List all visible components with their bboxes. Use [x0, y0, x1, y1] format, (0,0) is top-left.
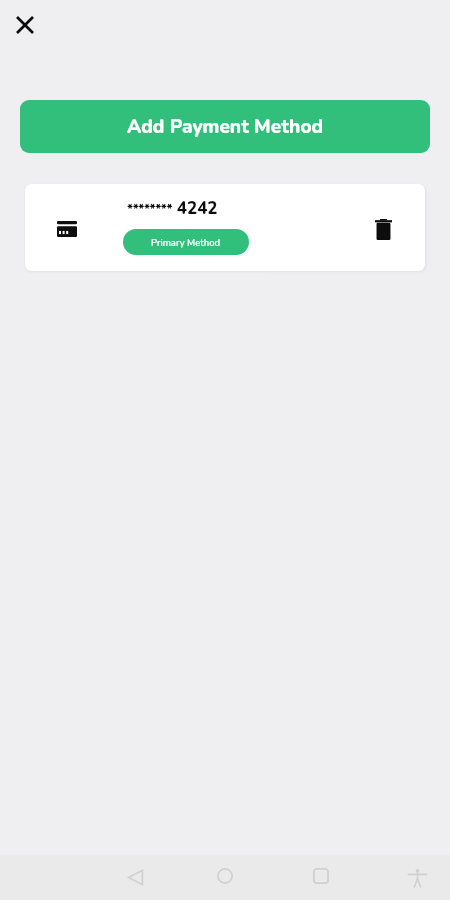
button[interactable]: Back [122, 864, 148, 890]
button[interactable]: Delete payment method [368, 214, 398, 244]
button[interactable]: Home [212, 863, 238, 889]
button[interactable]: Add Payment Method [20, 100, 430, 153]
button[interactable]: Primary Method [123, 229, 249, 255]
staticText: Add Payment Method [127, 114, 324, 140]
button[interactable]: Close [10, 10, 40, 40]
staticText: ******** 4242 [127, 197, 218, 220]
button[interactable]: ******** 4242 [25, 184, 425, 271]
staticText: Primary Method [151, 236, 221, 249]
button[interactable]: Recent apps [308, 863, 334, 889]
button[interactable]: Accessibility [404, 865, 430, 891]
